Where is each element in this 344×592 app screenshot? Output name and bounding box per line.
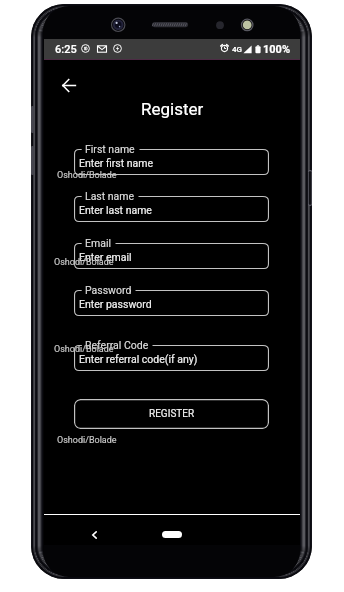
staticText: Enter first name bbox=[79, 157, 154, 169]
staticText: Oshodi/Bolade bbox=[57, 170, 117, 181]
staticText: Last name bbox=[85, 190, 135, 202]
staticText: REGISTER bbox=[149, 408, 195, 420]
staticText: Password bbox=[85, 284, 132, 296]
staticText: Email bbox=[85, 237, 111, 249]
button[interactable]: Back bbox=[54, 71, 83, 100]
staticText: Register bbox=[141, 99, 204, 119]
button[interactable]: Email bbox=[74, 243, 269, 269]
staticText: Enter last name bbox=[79, 204, 152, 216]
staticText: Oshodi/Bolade bbox=[54, 344, 114, 355]
button[interactable]: Password bbox=[74, 290, 269, 316]
staticText: 6:25 bbox=[55, 43, 77, 56]
staticText: Oshodi/Bolade bbox=[54, 257, 114, 268]
staticText: Enter referral code(if any) bbox=[79, 353, 198, 365]
staticText: First name bbox=[85, 143, 135, 155]
button[interactable]: Last name bbox=[74, 196, 269, 222]
staticText: Oshodi/Bolade bbox=[57, 435, 117, 446]
staticText: Enter email bbox=[79, 251, 132, 263]
staticText: Enter password bbox=[79, 298, 152, 310]
button[interactable]: First name bbox=[74, 149, 269, 175]
button[interactable]: REGISTER bbox=[74, 399, 269, 429]
staticText: 4G bbox=[232, 45, 242, 54]
staticText: Referral Code bbox=[85, 339, 149, 351]
button[interactable]: Back bbox=[86, 527, 102, 543]
staticText: 100% bbox=[263, 43, 291, 56]
button[interactable]: Referral Code bbox=[74, 345, 269, 371]
button[interactable]: Home bbox=[162, 531, 182, 538]
